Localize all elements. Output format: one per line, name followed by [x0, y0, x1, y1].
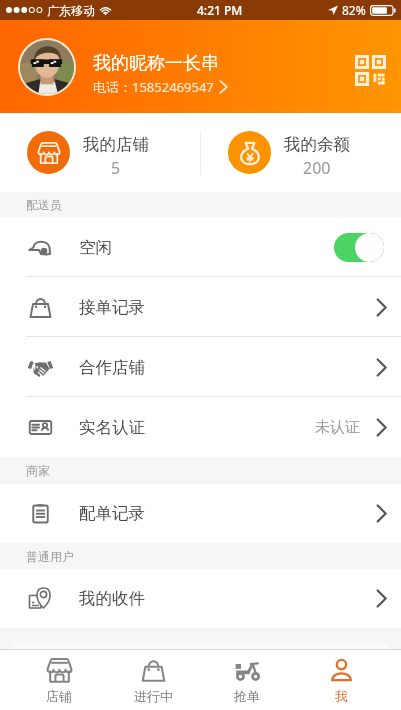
button[interactable]: 合作店铺 — [0, 337, 401, 397]
staticText: 我的收件 — [79, 588, 145, 609]
staticText: 商家 — [26, 463, 50, 478]
staticText: 配送员 — [26, 197, 62, 212]
button[interactable]: 我的店铺 — [0, 113, 200, 192]
staticText: 进行中 — [134, 688, 173, 704]
staticText: 200 — [303, 157, 331, 179]
staticText: 未认证 — [315, 418, 360, 437]
staticText: 店铺 — [46, 688, 72, 704]
staticText: 我的余额 — [284, 134, 350, 155]
staticText: 电话：15852469547 — [93, 78, 214, 96]
staticText: 接单记录 — [79, 297, 145, 318]
button[interactable]: 我 — [294, 650, 388, 710]
button[interactable]: 接单记录 — [0, 277, 401, 337]
staticText: 配单记录 — [79, 503, 145, 524]
button[interactable]: 抢单 — [200, 650, 294, 710]
staticText: 82% — [342, 2, 366, 18]
staticText: 实名认证 — [79, 417, 145, 438]
button[interactable]: 进行中 — [106, 650, 200, 710]
button[interactable]: 我的昵称一长串 — [0, 20, 401, 113]
staticText: 抢单 — [234, 688, 260, 704]
button[interactable]: 配单记录 — [0, 484, 401, 543]
staticText: 我的昵称一长串 — [93, 52, 219, 75]
staticText: 合作店铺 — [79, 357, 145, 378]
staticText: 普通用户 — [26, 549, 74, 564]
button[interactable]: 店铺 — [12, 650, 106, 710]
staticText: 广东移动 — [47, 3, 95, 18]
staticText: 空闲 — [79, 237, 112, 258]
staticText: 我的店铺 — [83, 134, 149, 155]
staticText: 5 — [111, 157, 121, 179]
staticText: 我 — [335, 688, 348, 704]
button[interactable]: QR code — [354, 54, 386, 86]
button[interactable]: 我的余额 — [201, 113, 401, 192]
button[interactable]: 空闲 — [0, 217, 401, 277]
button[interactable]: 我的收件 — [0, 569, 401, 628]
staticText: 4:21 PM — [197, 2, 243, 18]
button[interactable]: 实名认证 — [0, 397, 401, 457]
